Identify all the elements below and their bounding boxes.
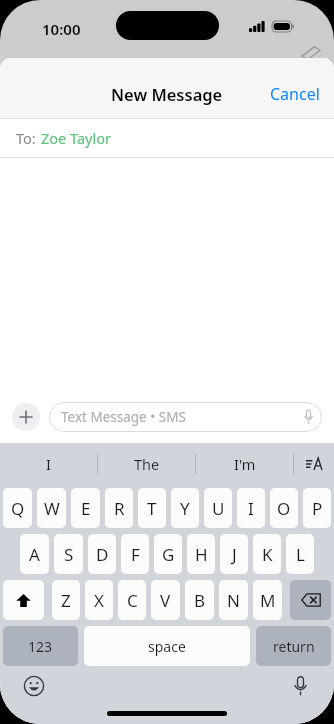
- button[interactable]: M: [253, 580, 282, 620]
- staticText: S: [64, 543, 74, 566]
- staticText: Zoe Taylor: [41, 128, 111, 148]
- button[interactable]: Emoji: [22, 674, 46, 698]
- button[interactable]: The: [98, 443, 195, 484]
- staticText: return: [273, 637, 315, 656]
- staticText: W: [44, 497, 60, 520]
- staticText: 123: [28, 637, 53, 656]
- button[interactable]: Q: [3, 488, 32, 528]
- staticText: Z: [61, 589, 71, 612]
- staticText: F: [131, 543, 140, 566]
- button[interactable]: Y: [171, 488, 199, 528]
- button[interactable]: X: [85, 580, 113, 620]
- button[interactable]: Text Message • SMS: [49, 402, 322, 432]
- button[interactable]: Z: [52, 580, 80, 620]
- staticText: D: [96, 543, 109, 566]
- button[interactable]: W: [37, 488, 66, 528]
- staticText: The: [134, 454, 160, 474]
- button[interactable]: T: [138, 488, 166, 528]
- staticText: N: [227, 589, 240, 612]
- button[interactable]: B: [185, 580, 214, 620]
- staticText: R: [114, 497, 125, 520]
- button[interactable]: To:: [0, 119, 334, 157]
- staticText: M: [260, 589, 276, 612]
- button[interactable]: F: [121, 534, 149, 574]
- staticText: X: [94, 589, 104, 612]
- button[interactable]: O: [270, 488, 298, 528]
- button[interactable]: I'm: [196, 443, 293, 484]
- button[interactable]: E: [71, 488, 100, 528]
- staticText: Cancel: [270, 83, 320, 105]
- button[interactable]: P: [303, 488, 331, 528]
- staticText: C: [127, 589, 138, 612]
- button[interactable]: L: [286, 534, 314, 574]
- button[interactable]: Text formatting: [294, 443, 334, 484]
- button[interactable]: I: [0, 443, 97, 484]
- button[interactable]: Cancel: [256, 77, 334, 111]
- staticText: A: [29, 543, 40, 566]
- staticText: V: [160, 589, 171, 612]
- staticText: H: [195, 543, 208, 566]
- staticText: 10:00: [42, 19, 81, 39]
- button[interactable]: K: [253, 534, 281, 574]
- staticText: New Message: [111, 83, 223, 105]
- button[interactable]: V: [151, 580, 180, 620]
- button[interactable]: space: [84, 626, 250, 666]
- staticText: space: [148, 637, 186, 656]
- staticText: O: [277, 497, 291, 520]
- button[interactable]: Add attachment: [12, 403, 40, 431]
- staticText: P: [312, 497, 323, 520]
- staticText: L: [296, 543, 305, 566]
- staticText: I: [46, 454, 51, 474]
- staticText: To:: [16, 128, 36, 148]
- button[interactable]: C: [118, 580, 146, 620]
- staticText: Q: [11, 497, 25, 520]
- staticText: J: [232, 543, 237, 566]
- button[interactable]: 123: [3, 626, 78, 666]
- button[interactable]: Dictation: [288, 674, 312, 698]
- button[interactable]: R: [105, 488, 133, 528]
- staticText: U: [212, 497, 225, 520]
- button[interactable]: Shift: [3, 580, 44, 620]
- button[interactable]: U: [204, 488, 232, 528]
- button[interactable]: I: [237, 488, 265, 528]
- staticText: B: [194, 589, 206, 612]
- staticText: T: [147, 497, 157, 520]
- staticText: E: [81, 497, 91, 520]
- staticText: K: [262, 543, 273, 566]
- button[interactable]: Backspace: [290, 580, 331, 620]
- staticText: G: [162, 543, 175, 566]
- button[interactable]: N: [219, 580, 248, 620]
- button[interactable]: D: [88, 534, 116, 574]
- button[interactable]: return: [256, 626, 331, 666]
- staticText: I: [248, 497, 254, 520]
- button[interactable]: J: [220, 534, 248, 574]
- button[interactable]: G: [154, 534, 182, 574]
- button[interactable]: S: [54, 534, 83, 574]
- staticText: Y: [180, 497, 190, 520]
- button[interactable]: A: [20, 534, 49, 574]
- staticText: Text Message • SMS: [61, 408, 304, 426]
- staticText: I'm: [234, 454, 256, 474]
- button[interactable]: H: [187, 534, 215, 574]
